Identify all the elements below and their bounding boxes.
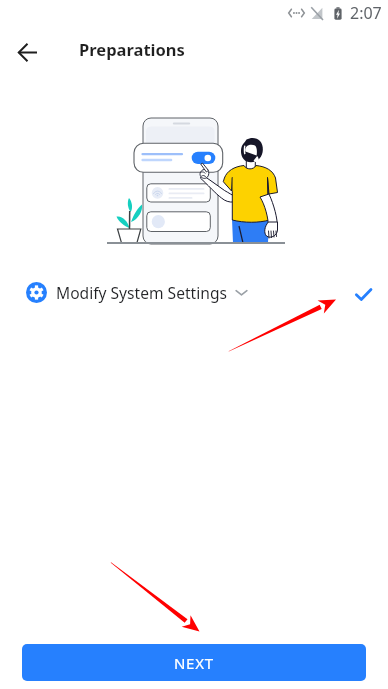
staticText: 2:07 xyxy=(350,2,382,24)
button[interactable]: Back xyxy=(7,32,48,73)
staticText: Modify System Settings xyxy=(56,282,227,303)
button[interactable]: NEXT xyxy=(22,644,366,681)
button[interactable]: Completed xyxy=(348,279,378,309)
staticText: NEXT xyxy=(174,653,214,673)
button[interactable]: Modify System Settings xyxy=(26,282,249,303)
staticText: Preparations xyxy=(79,38,185,60)
